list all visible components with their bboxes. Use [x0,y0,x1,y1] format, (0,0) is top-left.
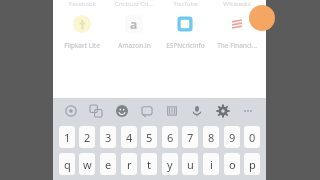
button[interactable]: p [244,153,260,175]
button[interactable]: 3 [100,126,116,148]
button[interactable]: i [203,153,219,175]
button[interactable]: 4 [121,126,137,148]
button[interactable]: e [100,153,116,175]
button[interactable]: Stickers [137,101,157,121]
staticText: a [130,16,138,32]
button[interactable]: Emoji [112,101,132,121]
staticText: t [147,157,151,172]
button[interactable]: o [224,153,240,175]
staticText: u [187,157,194,172]
staticText: 0 [249,130,256,145]
staticText: 4 [126,130,133,145]
staticText: 1 [64,130,71,145]
button[interactable]: 5 [141,126,157,148]
button[interactable]: Shortcut tile [160,9,210,39]
staticText: q [64,157,71,172]
button[interactable]: u [182,153,198,175]
staticText: y [167,157,173,172]
staticText: ESPNcricinfo [166,41,205,50]
staticText: i [210,157,213,172]
button[interactable]: Settings [213,101,233,121]
staticText: p [249,157,256,172]
button[interactable]: q [59,153,75,175]
button[interactable]: t [141,153,157,175]
staticText: Amazon.in [118,41,151,50]
staticText: 3 [105,130,112,145]
button[interactable]: 7 [182,126,198,148]
staticText: w [83,157,92,172]
staticText: YouTube [173,0,198,6]
staticText: o [229,157,236,172]
button[interactable]: Voice input [187,101,207,121]
staticText: Flipkart Lite [64,41,100,50]
staticText: e [105,157,112,172]
button[interactable]: 9 [224,126,240,148]
staticText: Cricbuzz Cri… [115,0,153,6]
button[interactable]: r [121,153,137,175]
button[interactable]: 0 [244,126,260,148]
staticText: 6 [167,130,174,145]
staticText: Facebook [69,0,96,6]
button[interactable]: Shortcut tile [109,9,159,39]
button[interactable]: More options [238,101,258,121]
button[interactable]: 6 [162,126,178,148]
button[interactable]: Translate [86,101,106,121]
button[interactable]: 8 [203,126,219,148]
button[interactable]: Google search [61,101,81,121]
button[interactable]: Clipboard [162,101,182,121]
staticText: 5 [146,130,153,145]
button[interactable]: Shortcut tile [57,9,107,39]
button[interactable]: Compose [249,5,275,31]
staticText: 7 [187,130,194,145]
staticText: 2 [84,130,91,145]
button[interactable]: 2 [79,126,95,148]
button[interactable]: Shortcut tile [212,9,262,39]
button[interactable]: w [79,153,95,175]
button[interactable]: y [162,153,178,175]
staticText: r [127,157,132,172]
staticText: The Financi… [217,41,257,50]
staticText: 9 [229,130,236,145]
staticText: Wikipedia [223,0,251,6]
staticText: 8 [208,130,215,145]
button[interactable]: 1 [59,126,75,148]
